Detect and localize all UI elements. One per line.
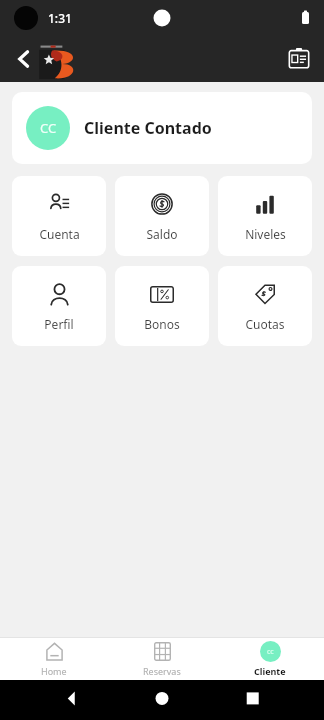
button[interactable]: Back <box>6 41 42 77</box>
button[interactable]: Cuenta <box>12 176 106 256</box>
staticText: Cuenta <box>39 226 80 242</box>
button[interactable]: Niveles <box>218 176 312 256</box>
staticText: cc <box>267 647 274 657</box>
staticText: Bonos <box>144 316 180 332</box>
staticText: Niveles <box>245 226 286 242</box>
button[interactable]: CC <box>12 92 312 164</box>
staticText: Saldo <box>146 226 178 242</box>
button[interactable]: cc <box>216 638 324 680</box>
staticText: Cliente Contado <box>84 117 212 139</box>
staticText: CC <box>40 119 57 137</box>
staticText: Reservas <box>143 665 181 677</box>
staticText: Cliente <box>254 665 286 677</box>
staticText: Perfil <box>44 316 74 332</box>
staticText: Home <box>41 665 67 677</box>
staticText: 1:31 <box>48 10 72 26</box>
button[interactable]: Bonos <box>115 266 209 346</box>
button[interactable]: Perfil <box>12 266 106 346</box>
button[interactable]: Credencial <box>282 42 316 76</box>
button[interactable]: Cuotas <box>218 266 312 346</box>
button[interactable]: Reservas <box>108 638 216 680</box>
button[interactable]: Saldo <box>115 176 209 256</box>
staticText: Cuotas <box>245 316 285 332</box>
button[interactable]: Home <box>0 638 108 680</box>
